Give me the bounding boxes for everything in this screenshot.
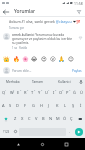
button[interactable]: V (33, 112, 40, 125)
staticText: K (56, 103, 59, 108)
button[interactable]: Send (73, 125, 84, 138)
button[interactable]: React (66, 54, 75, 64)
button[interactable]: React (57, 54, 66, 64)
button[interactable]: Back (13, 139, 24, 150)
staticText: 7 (48, 89, 50, 92)
staticText: 0 (69, 89, 71, 92)
button[interactable]: Z (11, 112, 19, 125)
staticText: Paylas (72, 69, 82, 73)
button[interactable]: 8 (50, 86, 57, 99)
staticText: C (28, 116, 31, 121)
button[interactable]: 7 (43, 86, 50, 99)
staticText: T (31, 90, 34, 95)
staticText: Tamam (32, 80, 44, 84)
button[interactable]: Filter (74, 7, 83, 16)
staticText: 🔥 (13, 56, 20, 62)
staticText: Ö (63, 116, 67, 121)
button[interactable]: Voice input (77, 77, 85, 86)
staticText: Tumunu gor (9, 26, 25, 30)
staticText: Yorum ekle... (12, 69, 32, 73)
button[interactable]: G (29, 99, 37, 112)
staticText: S (9, 103, 12, 108)
button[interactable]: Ş (69, 99, 77, 112)
button[interactable]: 9 (57, 86, 64, 99)
staticText: ornek.kullanici Yorumunuz burada gorunuy… (12, 33, 76, 45)
staticText: 🌸 (22, 56, 29, 62)
button[interactable]: 3 (15, 86, 22, 99)
staticText: J (48, 103, 50, 108)
button[interactable]: F (21, 99, 29, 112)
button[interactable]: Merhaba (0, 77, 25, 86)
button[interactable]: Recents (61, 139, 72, 150)
button[interactable]: Ö (61, 112, 68, 125)
staticText: 1 (5, 89, 7, 92)
staticText: V (35, 116, 38, 121)
button[interactable]: İ (77, 99, 85, 112)
button[interactable]: React (39, 54, 48, 64)
button[interactable]: React (30, 54, 39, 64)
button[interactable]: M (54, 112, 61, 125)
button[interactable]: D (14, 99, 21, 112)
button[interactable]: React (11, 54, 21, 64)
button[interactable]: React (48, 54, 57, 64)
button[interactable]: S (7, 99, 14, 112)
button[interactable]: Tamam (25, 77, 51, 86)
staticText: L (64, 103, 67, 108)
staticText: M (56, 116, 60, 121)
button[interactable]: Like (76, 33, 84, 41)
button[interactable]: 1 (0, 86, 8, 99)
staticText: Y (38, 90, 41, 95)
button[interactable]: N (47, 112, 54, 125)
staticText: P (66, 90, 69, 95)
staticText: 3 (20, 89, 22, 92)
staticText: 4 (27, 89, 29, 92)
button[interactable]: H (37, 99, 45, 112)
button[interactable]: Ç (68, 112, 75, 125)
staticText: Kullanici (58, 80, 71, 84)
staticText: 😊 (68, 56, 74, 62)
button[interactable]: X (19, 112, 26, 125)
button[interactable]: ?123 (1, 125, 12, 138)
button[interactable]: B (40, 112, 47, 125)
button[interactable]: Ğ (71, 86, 78, 99)
button[interactable]: React (21, 54, 30, 64)
staticText: B (42, 116, 45, 121)
button[interactable]: 6 (36, 86, 43, 99)
button[interactable]: A (0, 99, 7, 112)
button[interactable]: Home (37, 139, 48, 150)
button[interactable]: Shift (0, 112, 11, 125)
staticText: A (2, 103, 5, 108)
staticText: O (59, 90, 63, 95)
staticText: ?123 (3, 130, 10, 134)
button[interactable]: Emoji keyboard (12, 125, 19, 138)
button[interactable]: K (53, 99, 61, 112)
staticText: E (17, 90, 20, 95)
staticText: 🙏 (58, 56, 65, 62)
staticText: Merhaba (6, 80, 20, 84)
staticText: Z (14, 116, 17, 121)
staticText: N (49, 116, 53, 121)
button[interactable]: Kullanici (51, 77, 77, 86)
staticText: . (69, 129, 71, 134)
button[interactable]: Yorum ekle... (12, 69, 71, 73)
button[interactable]: React (1, 54, 11, 64)
staticText: G (32, 103, 35, 108)
button[interactable]: J (45, 99, 53, 112)
button[interactable]: 2 (8, 86, 15, 99)
button[interactable]: 5 (29, 86, 36, 99)
staticText: 💯 (76, 20, 81, 24)
button[interactable]: C (26, 112, 33, 125)
button[interactable]: 0 (64, 86, 71, 99)
button[interactable]: 4 (22, 86, 29, 99)
button[interactable]: 1 sa Yanitla (12, 46, 28, 50)
button[interactable]: Ü (78, 86, 85, 99)
button[interactable]: L (61, 99, 69, 112)
button[interactable]: Backspace (75, 112, 85, 125)
staticText: 6 (41, 89, 43, 92)
button[interactable]: Paylas (71, 69, 83, 73)
staticText: 11:58 (74, 1, 83, 6)
button[interactable]: Back (1, 7, 10, 16)
staticText: 😍 (41, 56, 47, 62)
